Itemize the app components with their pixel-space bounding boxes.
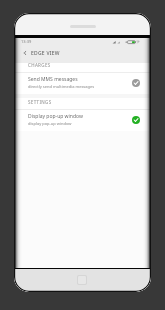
button[interactable]: Back: [17, 48, 30, 63]
staticText: Display pop-up window: [28, 113, 83, 120]
staticText: CHARGES: [28, 62, 51, 68]
staticText: 13:39: [21, 39, 32, 44]
staticText: EDGE VIEW: [31, 50, 60, 57]
staticText: display pop-up window: [28, 121, 72, 126]
button[interactable]: Send MMS messages: [14, 71, 151, 92]
button[interactable]: Display pop-up window: [14, 108, 151, 129]
button[interactable]: SETTINGS: [14, 97, 151, 106]
staticText: Send MMS messages: [28, 76, 78, 83]
button[interactable]: CHARGES: [14, 60, 151, 69]
staticText: SETTINGS: [28, 99, 52, 105]
staticText: directly send multimedia messages: [28, 84, 95, 89]
